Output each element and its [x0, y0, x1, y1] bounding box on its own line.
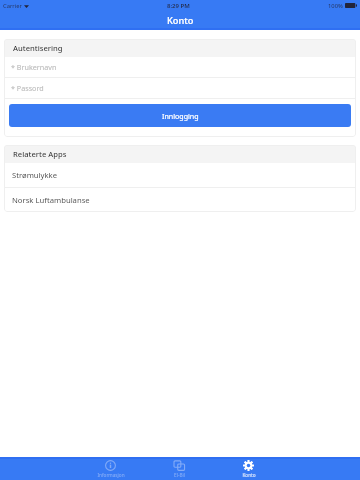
button[interactable]: * Brukernavn: [4, 57, 356, 77]
button[interactable]: Norsk Luftambulanse: [4, 188, 356, 212]
staticText: Informasjon: [97, 472, 125, 478]
button[interactable]: * Passord: [4, 78, 356, 98]
staticText: Relaterte Apps: [13, 149, 67, 159]
other: El-Bil: [174, 460, 185, 471]
button[interactable]: El-Bil: [145, 457, 214, 480]
staticText: * Brukernavn: [11, 62, 57, 72]
staticText: Norsk Luftambulanse: [12, 195, 90, 205]
other: Konto: [243, 460, 254, 471]
other: Informasjon: [105, 460, 116, 471]
button[interactable]: Informasjon: [76, 457, 145, 480]
staticText: * Passord: [11, 83, 44, 93]
button[interactable]: Konto: [214, 457, 283, 480]
staticText: 8:29 PM: [167, 2, 190, 10]
staticText: Autentisering: [13, 43, 63, 53]
staticText: Konto: [167, 14, 194, 27]
button[interactable]: Strømulykke: [4, 163, 356, 187]
staticText: Carrier: [3, 2, 22, 10]
staticText: Innlogging: [162, 111, 199, 121]
button[interactable]: Innlogging: [9, 104, 351, 127]
staticText: El-Bil: [174, 472, 185, 478]
staticText: 100%: [328, 2, 343, 10]
staticText: Konto: [242, 472, 256, 478]
staticText: Strømulykke: [12, 170, 58, 180]
